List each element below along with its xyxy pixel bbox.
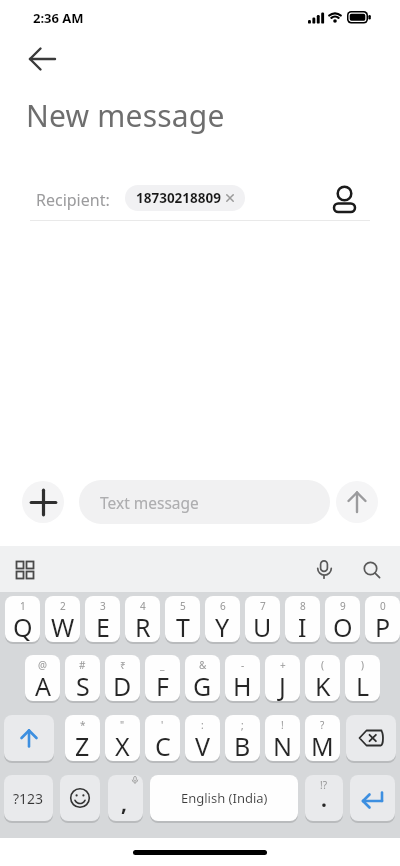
staticText: .	[321, 785, 327, 814]
staticText: O	[333, 610, 353, 644]
staticText: Z	[75, 729, 90, 763]
staticText: _	[160, 658, 165, 672]
staticText: 6	[220, 599, 226, 613]
staticText: &	[199, 658, 207, 672]
staticText: H	[233, 669, 252, 703]
staticText: S	[76, 669, 90, 703]
staticText: I	[298, 610, 307, 644]
staticText: 0	[380, 599, 386, 613]
staticText: +	[280, 658, 286, 672]
staticText: )	[361, 658, 364, 672]
staticText: D	[113, 669, 132, 703]
staticText: B	[234, 729, 251, 763]
staticText: Y	[215, 610, 230, 644]
staticText: C	[155, 729, 171, 763]
staticText: E	[96, 610, 110, 644]
staticText: X	[115, 729, 130, 763]
staticText: #	[79, 658, 86, 672]
staticText: 7	[260, 599, 266, 613]
staticText: R	[135, 610, 151, 644]
staticText: !?	[320, 778, 328, 792]
staticText: "	[120, 718, 125, 732]
staticText: Q	[13, 610, 33, 644]
staticText: (	[321, 658, 324, 672]
staticText: V	[195, 729, 211, 763]
staticText: F	[156, 669, 169, 703]
staticText: Text message	[100, 492, 199, 513]
staticText: '	[161, 718, 164, 732]
staticText: M	[311, 729, 334, 763]
staticText: Recipient:	[36, 189, 110, 211]
staticText: 18730218809	[136, 189, 221, 207]
staticText: T	[176, 610, 190, 644]
staticText: P	[375, 610, 391, 644]
staticText: :	[201, 718, 204, 732]
staticText: A	[35, 669, 51, 703]
staticText: 2	[60, 599, 66, 613]
staticText: W	[51, 610, 75, 644]
staticText: -	[241, 658, 245, 672]
staticText: ?	[320, 718, 325, 732]
staticText: G	[193, 669, 212, 703]
staticText: 3	[100, 599, 106, 613]
staticText: L	[356, 669, 370, 703]
staticText: ;	[241, 718, 244, 732]
staticText: *	[80, 718, 86, 732]
staticText: U	[253, 610, 272, 644]
staticText: 4	[140, 599, 146, 613]
staticText: ?123	[13, 789, 44, 808]
staticText: 2:36 AM	[33, 9, 84, 27]
staticText: 8	[300, 599, 306, 613]
staticText: @	[38, 658, 47, 672]
staticText: English (India)	[181, 789, 268, 807]
staticText: New message	[26, 95, 225, 136]
staticText: ,	[121, 789, 127, 818]
staticText: 5	[180, 599, 186, 613]
staticText: !	[281, 718, 284, 732]
staticText: 9	[340, 599, 346, 613]
staticText: 1	[20, 599, 26, 613]
staticText: ₹	[120, 658, 126, 672]
staticText: J	[279, 669, 286, 703]
staticText: K	[315, 669, 331, 703]
staticText: N	[273, 729, 293, 763]
